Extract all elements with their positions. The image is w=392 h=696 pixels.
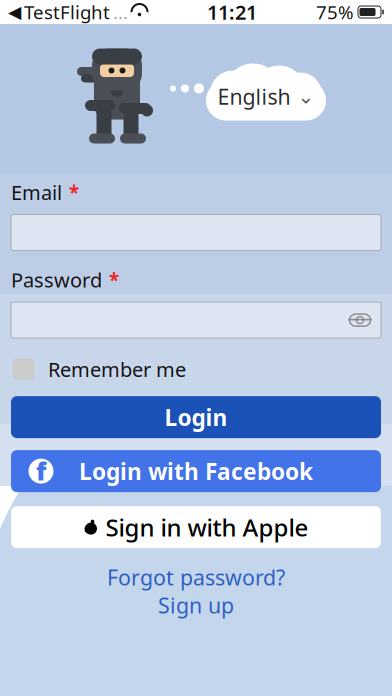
staticText: f	[36, 454, 46, 487]
staticText: Login	[164, 402, 227, 432]
staticText: Remember me	[48, 356, 186, 382]
staticText: ◀	[8, 2, 21, 22]
staticText: Sign up	[158, 591, 234, 619]
staticText: TestFlight	[24, 0, 110, 24]
staticText: Email	[11, 179, 62, 206]
staticText: ⌄	[297, 85, 314, 108]
staticText: 75%	[316, 0, 354, 24]
button[interactable]: Login	[11, 396, 381, 438]
button[interactable]: Sign up	[116, 592, 276, 618]
staticText: Forgot password?	[107, 563, 285, 591]
button[interactable]: Login with Facebook	[11, 450, 381, 492]
staticText: 11:21	[207, 0, 257, 25]
staticText: *	[109, 267, 119, 292]
button[interactable]: Language: English	[202, 66, 330, 128]
button[interactable]: Sign in with Apple	[11, 506, 381, 548]
button[interactable]: Show password	[343, 303, 377, 337]
staticText: English	[217, 82, 290, 111]
staticText: Login with Facebook	[79, 456, 313, 486]
staticText: Sign in with Apple	[105, 511, 308, 543]
staticText: ...	[113, 0, 128, 24]
staticText: Password	[11, 267, 102, 293]
staticText: *	[69, 180, 79, 205]
button[interactable]: Remember me	[0, 352, 392, 386]
button[interactable]: Forgot password?	[96, 564, 296, 590]
